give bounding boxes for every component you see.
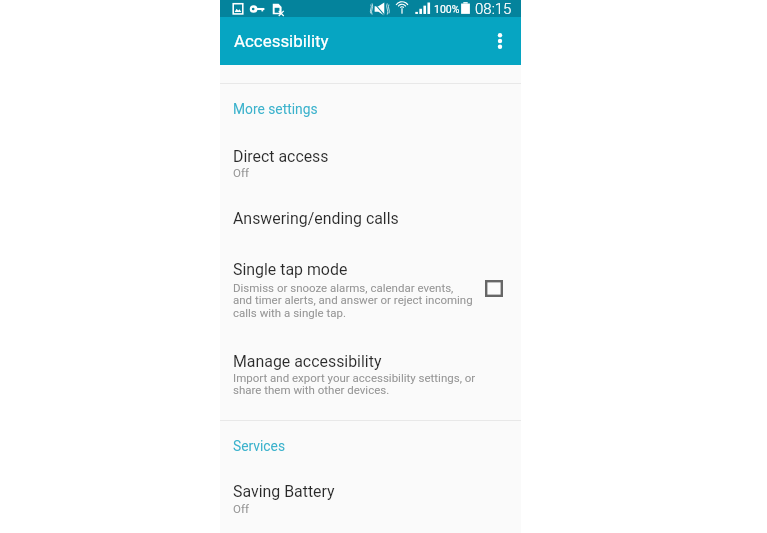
staticText: Dismiss or snooze alarms, calendar event… — [233, 281, 473, 320]
staticText: Manage accessibility — [233, 352, 382, 371]
staticText: 100% — [434, 3, 460, 15]
staticText: Off — [233, 166, 249, 179]
button[interactable]: Manage accessibility — [220, 334, 521, 410]
staticText: Services — [233, 438, 286, 454]
staticText: Import and export your accessibility set… — [233, 371, 476, 397]
button[interactable]: More settings — [220, 88, 521, 122]
button[interactable]: Saving Battery — [220, 463, 521, 525]
button[interactable]: Services — [220, 424, 521, 458]
staticText: Answering/ending calls — [233, 209, 399, 228]
staticText: Direct access — [233, 147, 329, 166]
button[interactable]: Single tap mode, off — [479, 273, 509, 303]
button[interactable]: More options — [479, 18, 521, 64]
staticText: Single tap mode — [233, 260, 348, 279]
button[interactable]: Single tap mode — [220, 242, 521, 330]
staticText: 08:15 — [475, 0, 512, 17]
button[interactable]: Direct access — [220, 128, 521, 188]
staticText: More settings — [233, 101, 318, 117]
staticText: Accessibility — [234, 31, 329, 51]
staticText: Off — [233, 502, 249, 515]
button[interactable]: Answering/ending calls — [220, 190, 521, 240]
staticText: Saving Battery — [233, 482, 335, 501]
